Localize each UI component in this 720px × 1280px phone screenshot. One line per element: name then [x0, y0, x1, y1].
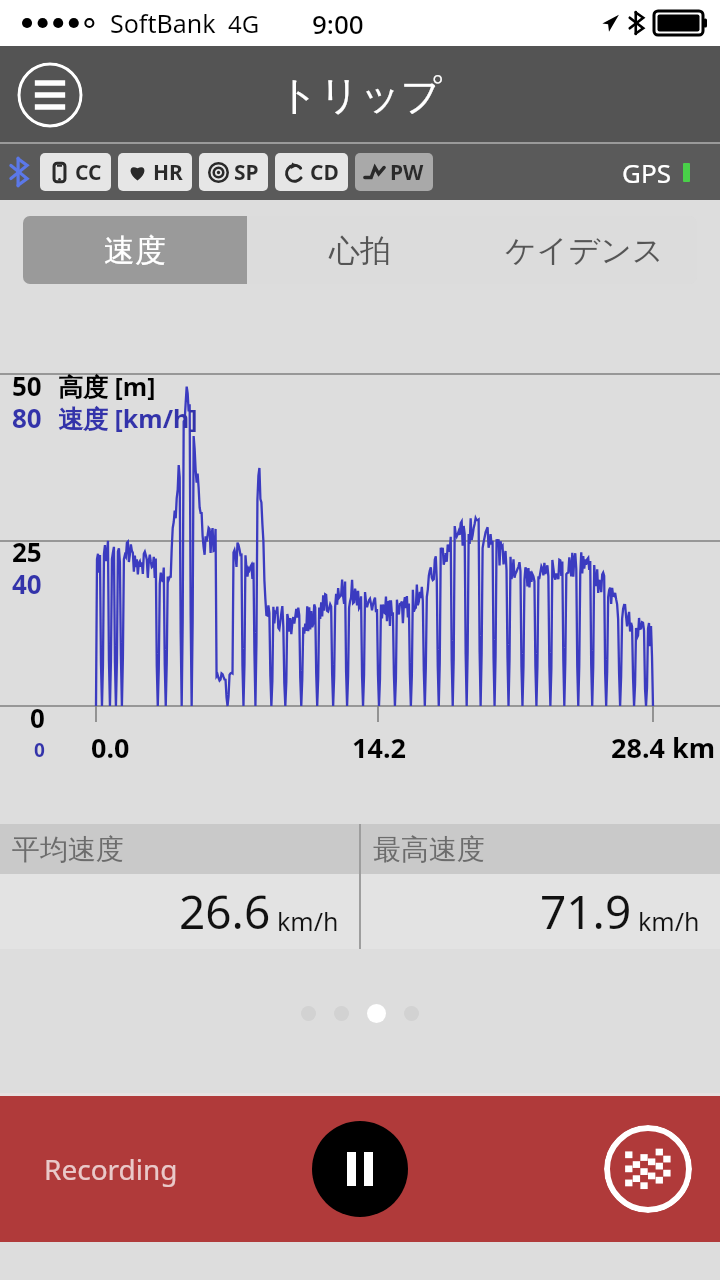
button[interactable]: ケイデンス [472, 216, 697, 284]
staticText: GPS [622, 155, 671, 190]
staticText: 0 [30, 700, 45, 735]
button[interactable] [404, 1006, 419, 1021]
button[interactable]: PW [355, 153, 433, 191]
staticText: km/h [277, 904, 339, 938]
staticText: 0 [34, 737, 45, 763]
button[interactable]: Menu [17, 62, 83, 128]
staticText: CD [310, 158, 339, 187]
staticText: km/h [638, 904, 700, 938]
button[interactable]: 速度 [23, 216, 247, 284]
button[interactable]: 心拍 [247, 216, 472, 284]
button[interactable]: SP [199, 153, 268, 191]
button[interactable]: CD [275, 153, 348, 191]
staticText: 14.2 [352, 729, 406, 766]
button[interactable] [367, 1004, 386, 1023]
staticText: 9:00 [312, 6, 364, 41]
staticText: トリップ [278, 70, 442, 120]
staticText: CC [75, 158, 102, 187]
staticText: HR [153, 158, 183, 187]
staticText: 26.6 [179, 880, 271, 943]
staticText: SP [234, 158, 259, 187]
staticText: 50 [12, 368, 42, 403]
staticText: 最高速度 [373, 832, 485, 867]
button[interactable]: HR [118, 153, 192, 191]
staticText: 高度 [m] [58, 369, 156, 403]
staticText: 0.0 [91, 729, 130, 766]
staticText: PW [390, 158, 424, 187]
staticText: 4G [228, 7, 260, 40]
staticText: Recording [44, 1150, 178, 1188]
staticText: 速度 [km/h] [58, 401, 198, 435]
button[interactable]: CC [40, 153, 111, 191]
button[interactable]: 平均速度 [0, 824, 359, 949]
button[interactable]: 最高速度 [361, 824, 720, 949]
button[interactable]: Finish ride [604, 1125, 692, 1213]
staticText: 25 [12, 534, 42, 569]
staticText: 28.4 km [611, 729, 716, 766]
staticText: 心拍 [329, 231, 391, 270]
button[interactable]: Pause recording [312, 1121, 408, 1217]
staticText: 80 [12, 400, 42, 435]
button[interactable] [334, 1006, 349, 1021]
staticText: 40 [12, 566, 42, 601]
staticText: 速度 [104, 231, 166, 270]
staticText: ケイデンス [505, 231, 664, 270]
button[interactable] [301, 1006, 316, 1021]
staticText: SoftBank [110, 6, 216, 40]
staticText: 71.9 [540, 880, 632, 943]
staticText: 平均速度 [12, 832, 124, 867]
